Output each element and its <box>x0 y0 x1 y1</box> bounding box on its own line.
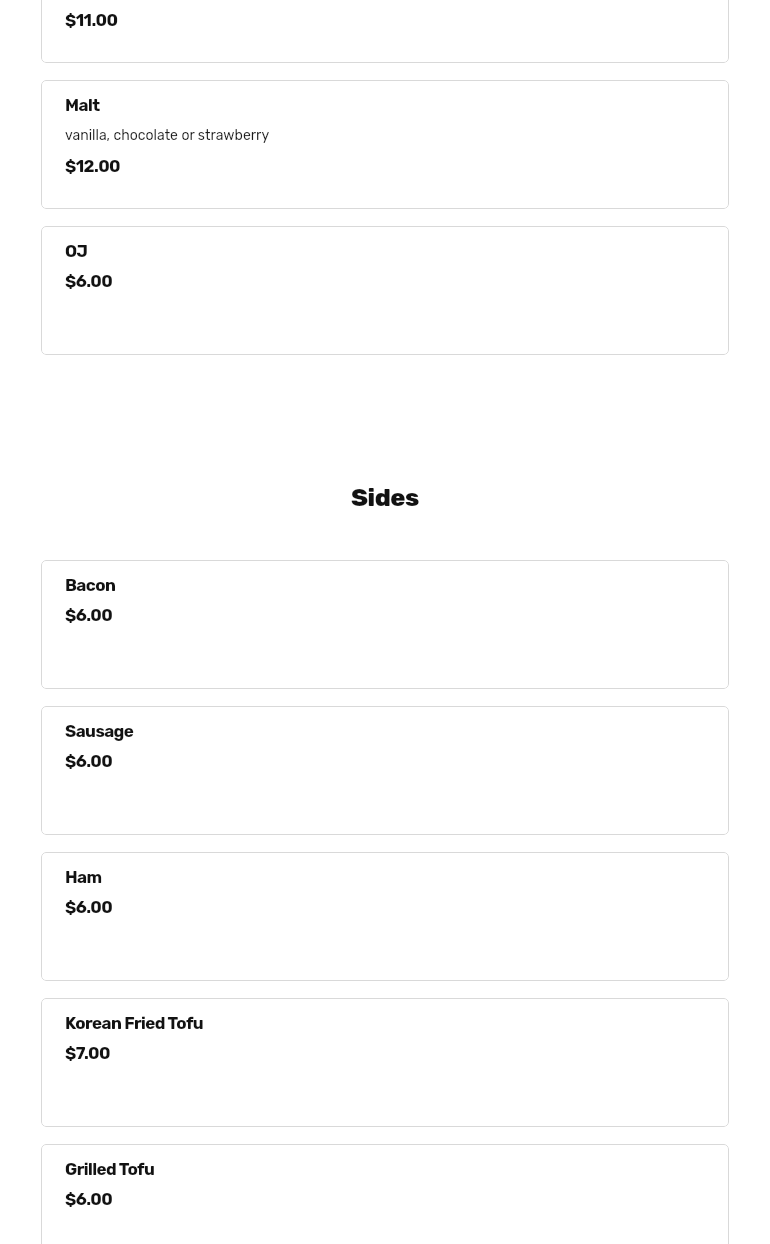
staticText: $12.00 <box>65 156 121 176</box>
staticText: $6.00 <box>65 271 113 291</box>
staticText: $6.00 <box>65 751 113 771</box>
staticText: $6.00 <box>65 1189 113 1209</box>
button[interactable]: Korean Fried Tofu <box>41 998 729 1127</box>
staticText: Ham <box>65 867 102 887</box>
staticText: $6.00 <box>65 605 113 625</box>
button[interactable]: Malt <box>41 80 729 209</box>
button[interactable]: Shake <box>41 0 729 63</box>
button[interactable]: OJ <box>41 226 729 355</box>
staticText: Bacon <box>65 575 116 595</box>
button[interactable]: Ham <box>41 852 729 981</box>
staticText: Malt <box>65 95 100 115</box>
staticText: Sausage <box>65 721 134 741</box>
staticText: $11.00 <box>65 10 118 30</box>
staticText: $7.00 <box>65 1043 110 1063</box>
button[interactable]: Grilled Tofu <box>41 1144 729 1244</box>
staticText: Grilled Tofu <box>65 1159 155 1179</box>
staticText: Sides <box>0 483 770 513</box>
button[interactable]: Sausage <box>41 706 729 835</box>
staticText: vanilla, chocolate or strawberry <box>65 127 270 144</box>
staticText: $6.00 <box>65 897 113 917</box>
staticText: Korean Fried Tofu <box>65 1013 204 1033</box>
button[interactable]: Bacon <box>41 560 729 689</box>
staticText: OJ <box>65 241 88 261</box>
